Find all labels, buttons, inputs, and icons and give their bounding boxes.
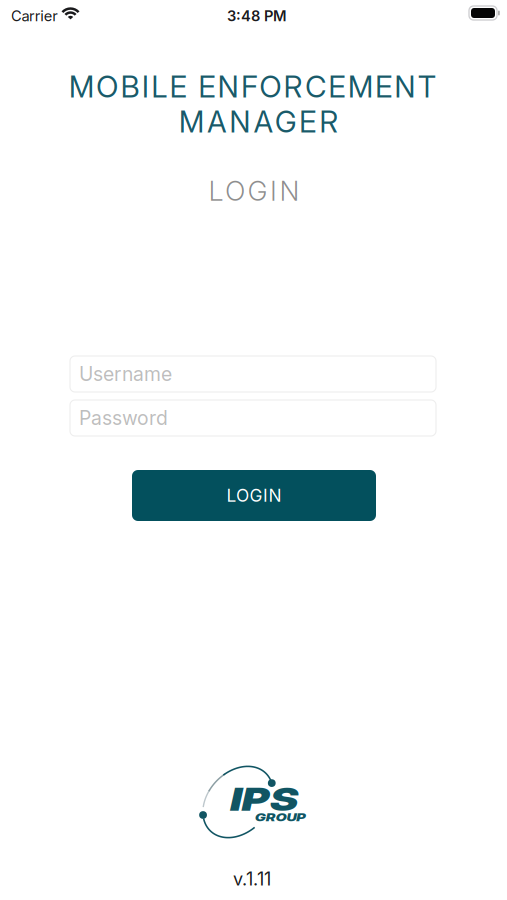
staticText: 3:48 PM (227, 7, 287, 25)
staticText: Carrier (11, 7, 58, 25)
staticText: IPS (230, 780, 284, 820)
staticText: MOBILE ENFORCEMENT (69, 69, 436, 104)
staticText: MANAGER (179, 104, 338, 139)
button[interactable]: LOGIN (132, 470, 376, 521)
staticText: v.1.11 (233, 868, 271, 890)
staticText: LOGIN (226, 485, 281, 506)
staticText: LOGIN (209, 175, 299, 207)
staticText: GROUP (255, 811, 306, 829)
staticText: Password (79, 406, 168, 430)
staticText: Username (79, 362, 172, 386)
